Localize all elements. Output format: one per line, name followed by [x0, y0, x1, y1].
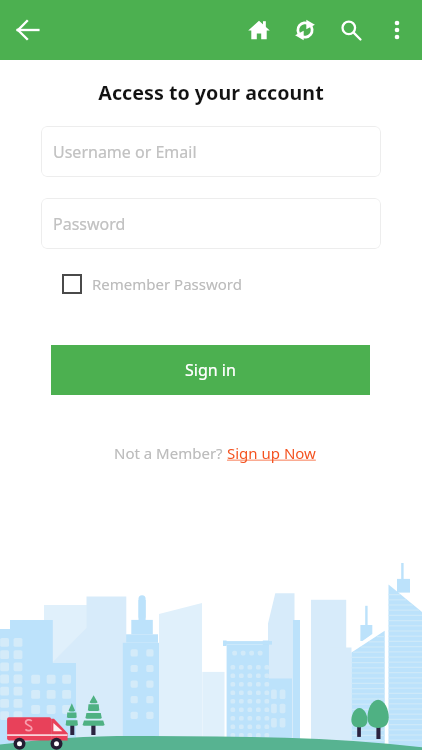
button[interactable]: Username or Email	[41, 126, 381, 177]
button[interactable]: Remember Password	[62, 274, 242, 294]
staticText: Username or Email	[53, 141, 197, 163]
button[interactable]: Sign up Now	[227, 443, 316, 463]
button[interactable]: Home	[236, 7, 282, 53]
button[interactable]: More options	[374, 7, 420, 53]
button[interactable]: Sign in	[51, 345, 370, 395]
staticText: Not a Member?	[114, 443, 227, 463]
button[interactable]: Refresh	[282, 7, 328, 53]
staticText: Access to your account	[0, 79, 422, 106]
staticText: Remember Password	[92, 274, 242, 294]
button[interactable]: Search	[328, 7, 374, 53]
button[interactable]: Back	[6, 8, 50, 52]
staticText: Password	[53, 213, 126, 235]
staticText: Sign in	[185, 359, 236, 381]
button[interactable]: Password	[41, 198, 381, 249]
